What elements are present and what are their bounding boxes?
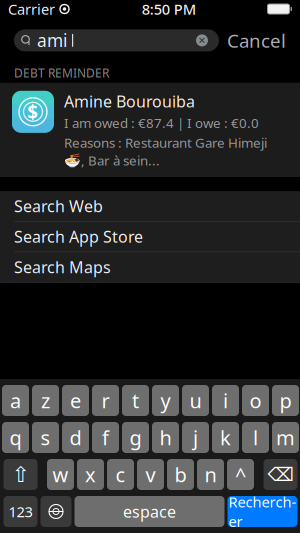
staticText: d	[69, 424, 81, 451]
staticText: p	[279, 387, 291, 414]
button[interactable]: z	[32, 385, 59, 416]
button[interactable]: o	[242, 385, 269, 416]
staticText: ✕	[198, 35, 206, 46]
button[interactable]: q	[2, 422, 29, 453]
staticText: q	[9, 424, 21, 451]
button[interactable]: r	[92, 385, 119, 416]
button[interactable]: ^	[227, 459, 254, 490]
staticText: a	[10, 387, 21, 414]
button[interactable]: $	[0, 83, 300, 177]
button[interactable]: g	[122, 422, 149, 453]
button[interactable]: n	[197, 459, 224, 490]
staticText: t	[132, 387, 139, 414]
button[interactable]: Next keyboard	[40, 496, 71, 527]
staticText: ⌫	[267, 464, 293, 485]
staticText: b	[174, 461, 186, 488]
button[interactable]: l	[242, 422, 269, 453]
button[interactable]: a	[2, 385, 29, 416]
staticText: Rechercher	[228, 492, 296, 531]
button[interactable]: espace	[74, 496, 224, 527]
button[interactable]: t	[122, 385, 149, 416]
staticText: j	[193, 424, 198, 451]
staticText: Reasons : Restaurant Gare Himeji 🍜, Bar …	[64, 134, 267, 169]
staticText: Carrier	[8, 0, 55, 19]
staticText: r	[101, 387, 109, 414]
button[interactable]: Search Maps	[0, 252, 300, 283]
button[interactable]: d	[62, 422, 89, 453]
button[interactable]: p	[272, 385, 299, 416]
button[interactable]: v	[137, 459, 164, 490]
staticText: g	[129, 424, 141, 451]
staticText: $	[27, 99, 38, 124]
button[interactable]: f	[92, 422, 119, 453]
button[interactable]: u	[182, 385, 209, 416]
button[interactable]: Search App Store	[0, 222, 300, 252]
staticText: v	[145, 461, 155, 488]
button[interactable]: j	[182, 422, 209, 453]
staticText: Search Web	[14, 195, 103, 217]
button[interactable]: Rechercher	[227, 496, 297, 527]
staticText: e	[70, 387, 81, 414]
staticText: espace	[123, 501, 176, 522]
staticText: f	[102, 424, 109, 451]
button[interactable]: c	[107, 459, 134, 490]
staticText: h	[159, 424, 171, 451]
staticText: ^	[235, 461, 246, 488]
button[interactable]: Clear search	[192, 30, 212, 50]
staticText: z	[41, 387, 50, 414]
button[interactable]: k	[212, 422, 239, 453]
staticText: m	[276, 424, 295, 451]
button[interactable]: w	[47, 459, 74, 490]
staticText: 8:50 PM	[142, 0, 196, 19]
staticText: y	[160, 387, 170, 414]
button[interactable]: Shift	[3, 459, 37, 490]
button[interactable]: Search Web	[0, 191, 300, 222]
button[interactable]: b	[167, 459, 194, 490]
staticText: i	[223, 387, 228, 414]
staticText: Search App Store	[14, 226, 143, 247]
staticText: k	[220, 424, 231, 451]
staticText: Amine Bourouiba	[64, 91, 195, 112]
staticText: u	[189, 387, 201, 414]
staticText: 123	[8, 502, 32, 521]
staticText: c	[115, 461, 125, 488]
button[interactable]: i	[212, 385, 239, 416]
staticText: x	[85, 461, 96, 488]
button[interactable]: m	[272, 422, 299, 453]
staticText: n	[204, 461, 216, 488]
button[interactable]: Delete	[263, 459, 297, 490]
button[interactable]: x	[77, 459, 104, 490]
button[interactable]: e	[62, 385, 89, 416]
staticText: Search Maps	[14, 256, 111, 278]
button[interactable]: s	[32, 422, 59, 453]
button[interactable]: h	[152, 422, 179, 453]
button[interactable]: Cancel	[227, 24, 286, 57]
button[interactable]: 123	[3, 496, 37, 527]
staticText: ⇧	[11, 462, 29, 487]
staticText: Cancel	[227, 28, 286, 53]
staticText: o	[249, 387, 261, 414]
button[interactable]: y	[152, 385, 179, 416]
staticText: l	[253, 424, 258, 451]
staticText: w	[52, 461, 68, 488]
staticText: DEBT REMINDER	[14, 65, 109, 81]
staticText: ami	[37, 29, 67, 52]
staticText: I am owed : €87.4 | I owe : €0.0	[64, 114, 259, 132]
staticText: s	[40, 424, 50, 451]
